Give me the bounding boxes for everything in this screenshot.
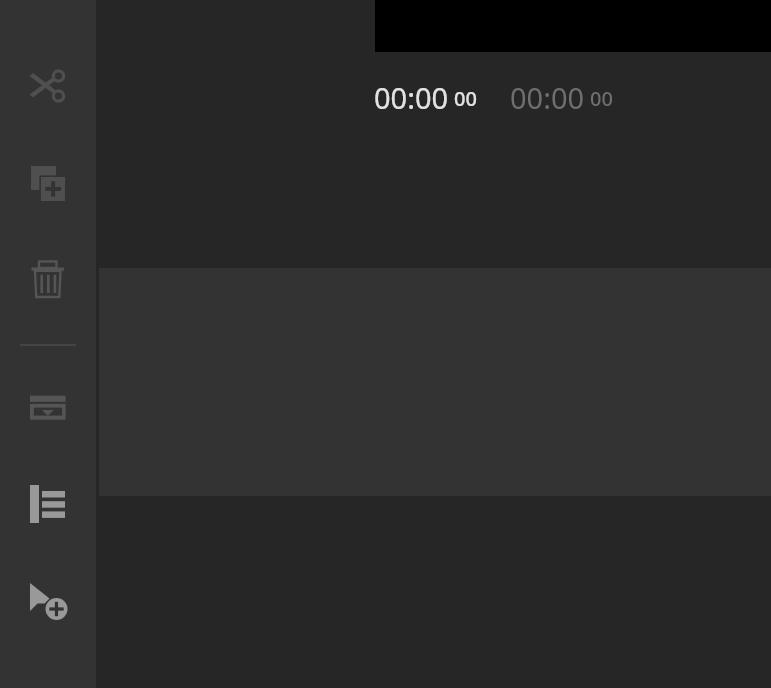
staticText: 00	[454, 85, 477, 112]
button[interactable]: Track options	[24, 384, 72, 432]
staticText: 00	[590, 85, 613, 112]
button[interactable]: Current position	[374, 78, 477, 117]
button[interactable]: Duplicate	[24, 159, 72, 207]
button[interactable]: Align tracks	[24, 480, 72, 528]
staticText: 00:00	[510, 78, 585, 117]
button[interactable]: Add clip	[24, 576, 72, 624]
button[interactable]: Total duration	[510, 78, 613, 117]
staticText: 00:00	[374, 78, 449, 117]
button[interactable]: Delete	[24, 256, 72, 304]
button[interactable]: Cut	[24, 64, 72, 112]
